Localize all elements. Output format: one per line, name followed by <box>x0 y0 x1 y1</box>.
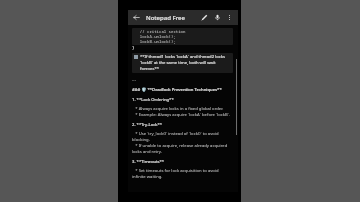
staticText: 3. **Timeouts** <box>132 159 165 165</box>
staticText: * Example: Always acquire `lockA` before… <box>132 112 231 118</box>
button[interactable]: Edit <box>199 12 210 23</box>
staticText: * Use `try_lock()` instead of `lock()` t… <box>132 131 233 143</box>
staticText: ### 🛡 **Deadlock Prevention Techniques** <box>132 87 222 93</box>
staticText: **If thread1 locks `lockA` and thread2 l… <box>140 54 231 72</box>
staticText: * Always acquire locks in a fixed global… <box>132 106 224 112</box>
staticText: lockB.unlock(); <box>135 39 176 44</box>
staticText: * If unable to acquire, release already … <box>132 143 233 155</box>
button[interactable]: Back <box>131 12 142 23</box>
staticText: } <box>132 45 135 50</box>
staticText: 2. **Try-Lock** <box>132 122 163 128</box>
staticText: Notepad Free <box>146 14 185 22</box>
button[interactable]: More options <box>224 12 235 23</box>
staticText: * Set timeouts for lock acquisition to a… <box>132 168 233 180</box>
button[interactable]: Voice input <box>212 12 223 23</box>
staticText: lockA.unlock(); <box>135 34 176 39</box>
staticText: --- <box>132 77 137 83</box>
staticText: // critical section <box>135 29 186 34</box>
staticText: 1. **Lock Ordering** <box>132 97 174 103</box>
